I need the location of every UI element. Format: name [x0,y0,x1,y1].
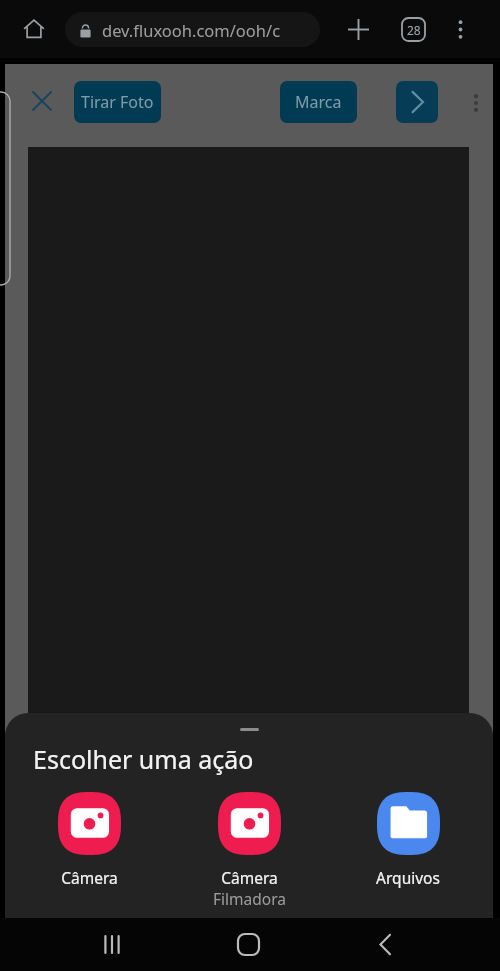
button[interactable]: Tabs [393,9,433,49]
button[interactable]: Home [218,918,278,971]
staticText: Marca [295,91,342,113]
staticText: Filmadora [213,888,286,909]
button[interactable]: Page menu [459,86,493,120]
staticText: Câmera [61,867,118,888]
staticText: Câmera [221,867,278,888]
button[interactable]: Câmera [9,792,169,888]
button[interactable]: Back [355,918,415,971]
button[interactable]: Tirar Foto [74,81,161,123]
staticText: Arquivos [376,867,440,888]
button[interactable]: dev.fluxooh.com/ooh/c [65,12,320,47]
button[interactable]: Recent apps [82,918,142,971]
button[interactable]: Marca [280,81,357,123]
button[interactable]: Close [22,81,62,121]
button[interactable]: Arquivos [328,792,488,888]
staticText: 28 [407,22,421,38]
staticText: Tirar Foto [81,91,154,113]
button[interactable]: Câmera [169,792,329,909]
staticText: dev.fluxooh.com/ooh/c [102,19,281,41]
button[interactable]: More options [440,9,480,49]
button[interactable]: New tab [338,9,378,49]
staticText: Escolher uma ação [33,742,254,776]
button[interactable]: Home [14,9,54,49]
button[interactable]: Next [396,81,438,123]
